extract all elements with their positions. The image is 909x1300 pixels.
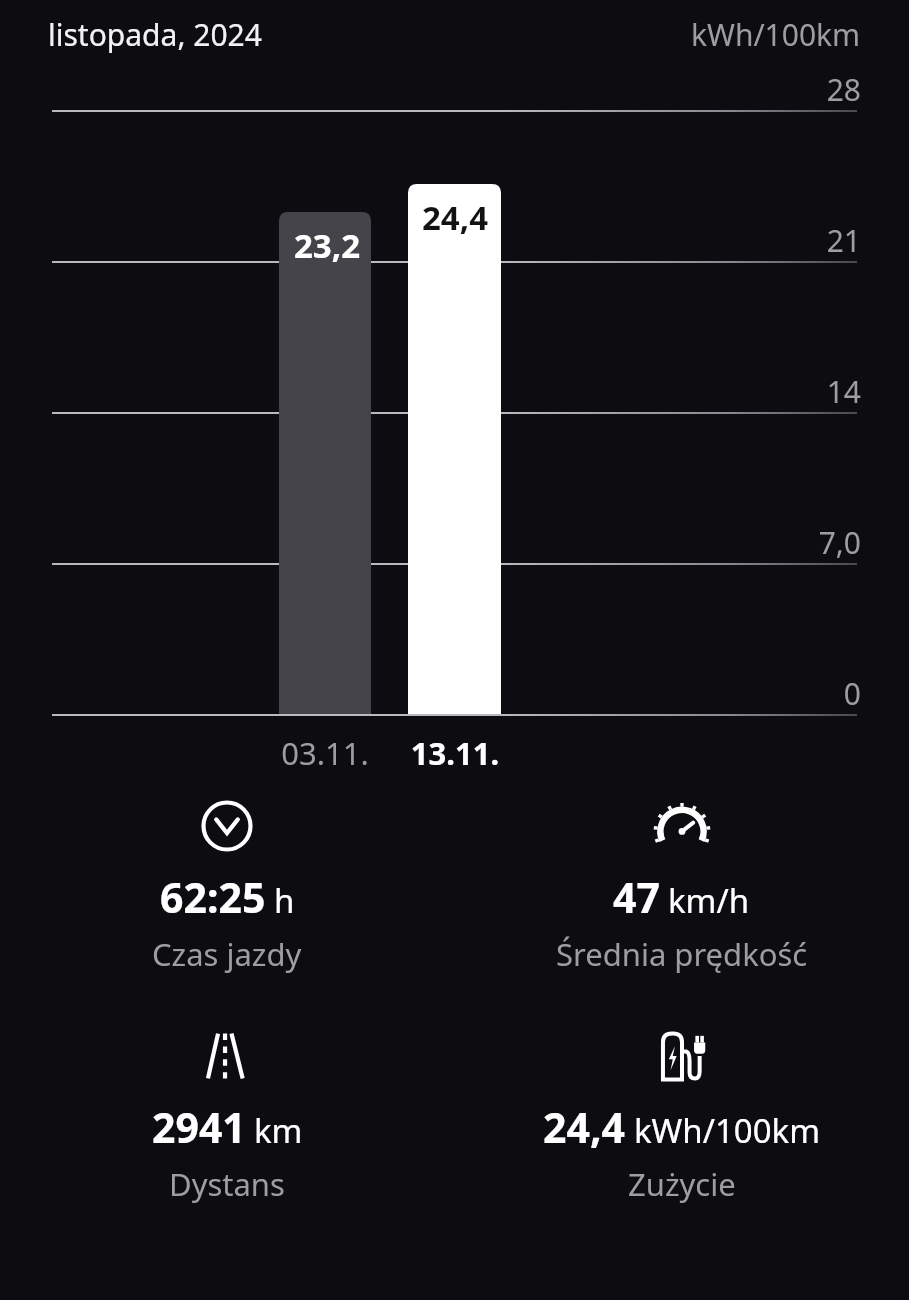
staticText: 14 (0, 371, 861, 412)
staticText: 24,4 (414, 195, 496, 240)
staticText: 47 (613, 869, 660, 925)
button[interactable]: Average speed (454, 793, 909, 977)
staticText: 2941 (152, 1099, 246, 1155)
other: Consumption (651, 1025, 713, 1087)
other: Average speed (651, 795, 713, 857)
button[interactable]: Driving time (0, 793, 454, 977)
staticText: 0 (0, 673, 861, 714)
button[interactable]: Distance (0, 1023, 454, 1207)
other: Driving time (196, 795, 258, 857)
staticText: km/h (668, 878, 750, 923)
staticText: 24,4 (543, 1099, 626, 1155)
staticText: 13.11. (395, 732, 515, 774)
staticText: 28 (0, 69, 861, 110)
staticText: 62:25 (160, 869, 266, 925)
staticText: Średnia prędkość (556, 933, 808, 975)
staticText: Zużycie (628, 1163, 736, 1205)
staticText: Czas jazdy (152, 933, 302, 975)
staticText: kWh/100km (634, 1108, 821, 1153)
staticText: 7,0 (0, 522, 861, 563)
staticText: km (254, 1108, 303, 1153)
staticText: h (274, 878, 295, 923)
staticText: Dystans (169, 1163, 285, 1205)
staticText: kWh/100km (691, 14, 861, 55)
staticText: 21 (0, 220, 861, 261)
staticText: listopada, 2024 (48, 14, 262, 55)
other: Distance (196, 1025, 258, 1087)
staticText: 23,2 (287, 223, 367, 268)
button[interactable]: Consumption (454, 1023, 909, 1207)
staticText: 03.11. (265, 732, 385, 774)
